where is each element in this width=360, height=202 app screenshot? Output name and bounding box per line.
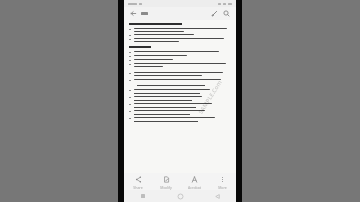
button[interactable]: Back xyxy=(199,190,236,202)
staticText: Modify xyxy=(160,185,172,190)
button[interactable]: Share xyxy=(124,173,152,190)
staticText: Share xyxy=(133,185,143,190)
staticText: More xyxy=(218,185,227,190)
button[interactable]: More xyxy=(208,173,236,190)
button[interactable]: Back xyxy=(128,8,139,19)
staticText: SAMPLE.Com xyxy=(197,78,224,116)
button[interactable]: Home xyxy=(162,190,199,202)
staticText: Acrobat xyxy=(188,185,201,190)
button[interactable]: Edit xyxy=(209,8,220,19)
button[interactable]: Acrobat xyxy=(180,173,208,190)
button[interactable]: Modify xyxy=(152,173,180,190)
button[interactable]: Recents xyxy=(124,190,162,202)
button[interactable]: Search xyxy=(221,8,232,19)
